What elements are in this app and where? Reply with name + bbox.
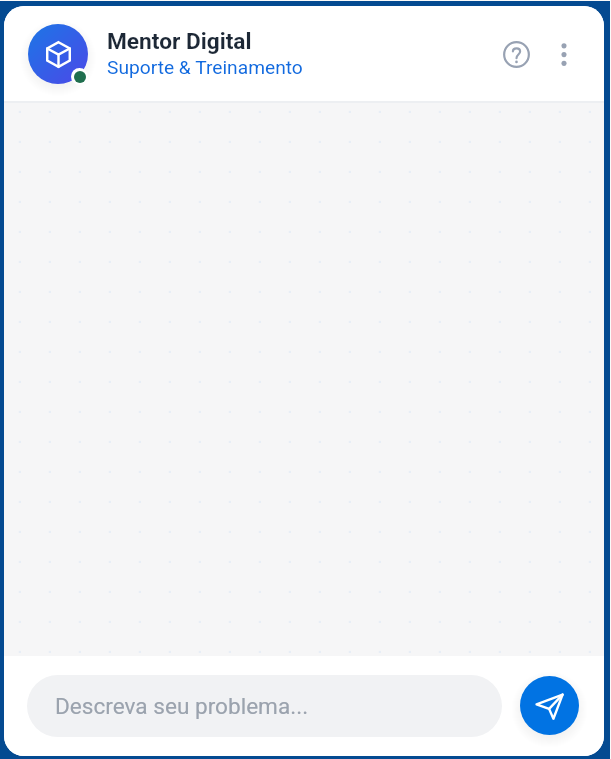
button[interactable]: Mentor Digital [28, 6, 494, 101]
button[interactable]: Help [494, 32, 538, 76]
button[interactable]: More options [543, 33, 585, 75]
staticText: Descreva seu problema... [55, 693, 309, 719]
button[interactable]: Descreva seu problema... [27, 675, 502, 737]
button[interactable]: Send [520, 676, 579, 735]
staticText: Mentor Digital [107, 28, 252, 55]
staticText: Suporte & Treinamento [107, 56, 303, 79]
